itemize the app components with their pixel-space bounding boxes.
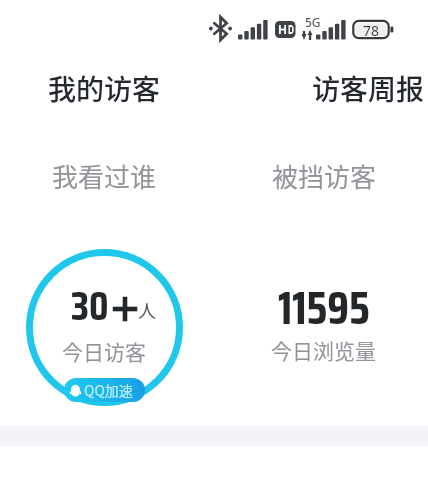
staticText: 访客周报 bbox=[312, 68, 425, 109]
staticText: 我看过谁 bbox=[52, 157, 157, 195]
staticText: 人 bbox=[138, 297, 156, 323]
button[interactable]: 11595 bbox=[244, 275, 424, 347]
button[interactable]: 我的访客 bbox=[32, 62, 177, 115]
staticText: QQ加速 bbox=[84, 380, 133, 400]
staticText: 今日浏览量 bbox=[271, 335, 376, 365]
button[interactable]: 我看过谁 bbox=[36, 151, 173, 201]
staticText: 5G bbox=[305, 14, 321, 30]
staticText: 被挡访客 bbox=[272, 157, 377, 195]
staticText: 30 bbox=[71, 273, 109, 338]
button[interactable]: 今日访客 30+人 bbox=[26, 249, 183, 406]
button[interactable]: 被挡访客 bbox=[256, 151, 393, 201]
staticText: 78 bbox=[363, 21, 380, 40]
staticText: 11595 bbox=[278, 272, 370, 344]
button[interactable]: 访客周报 bbox=[296, 62, 428, 115]
button[interactable]: QQ加速 bbox=[64, 378, 145, 402]
staticText: 我的访客 bbox=[48, 68, 161, 109]
staticText: 今日访客 bbox=[62, 336, 146, 366]
